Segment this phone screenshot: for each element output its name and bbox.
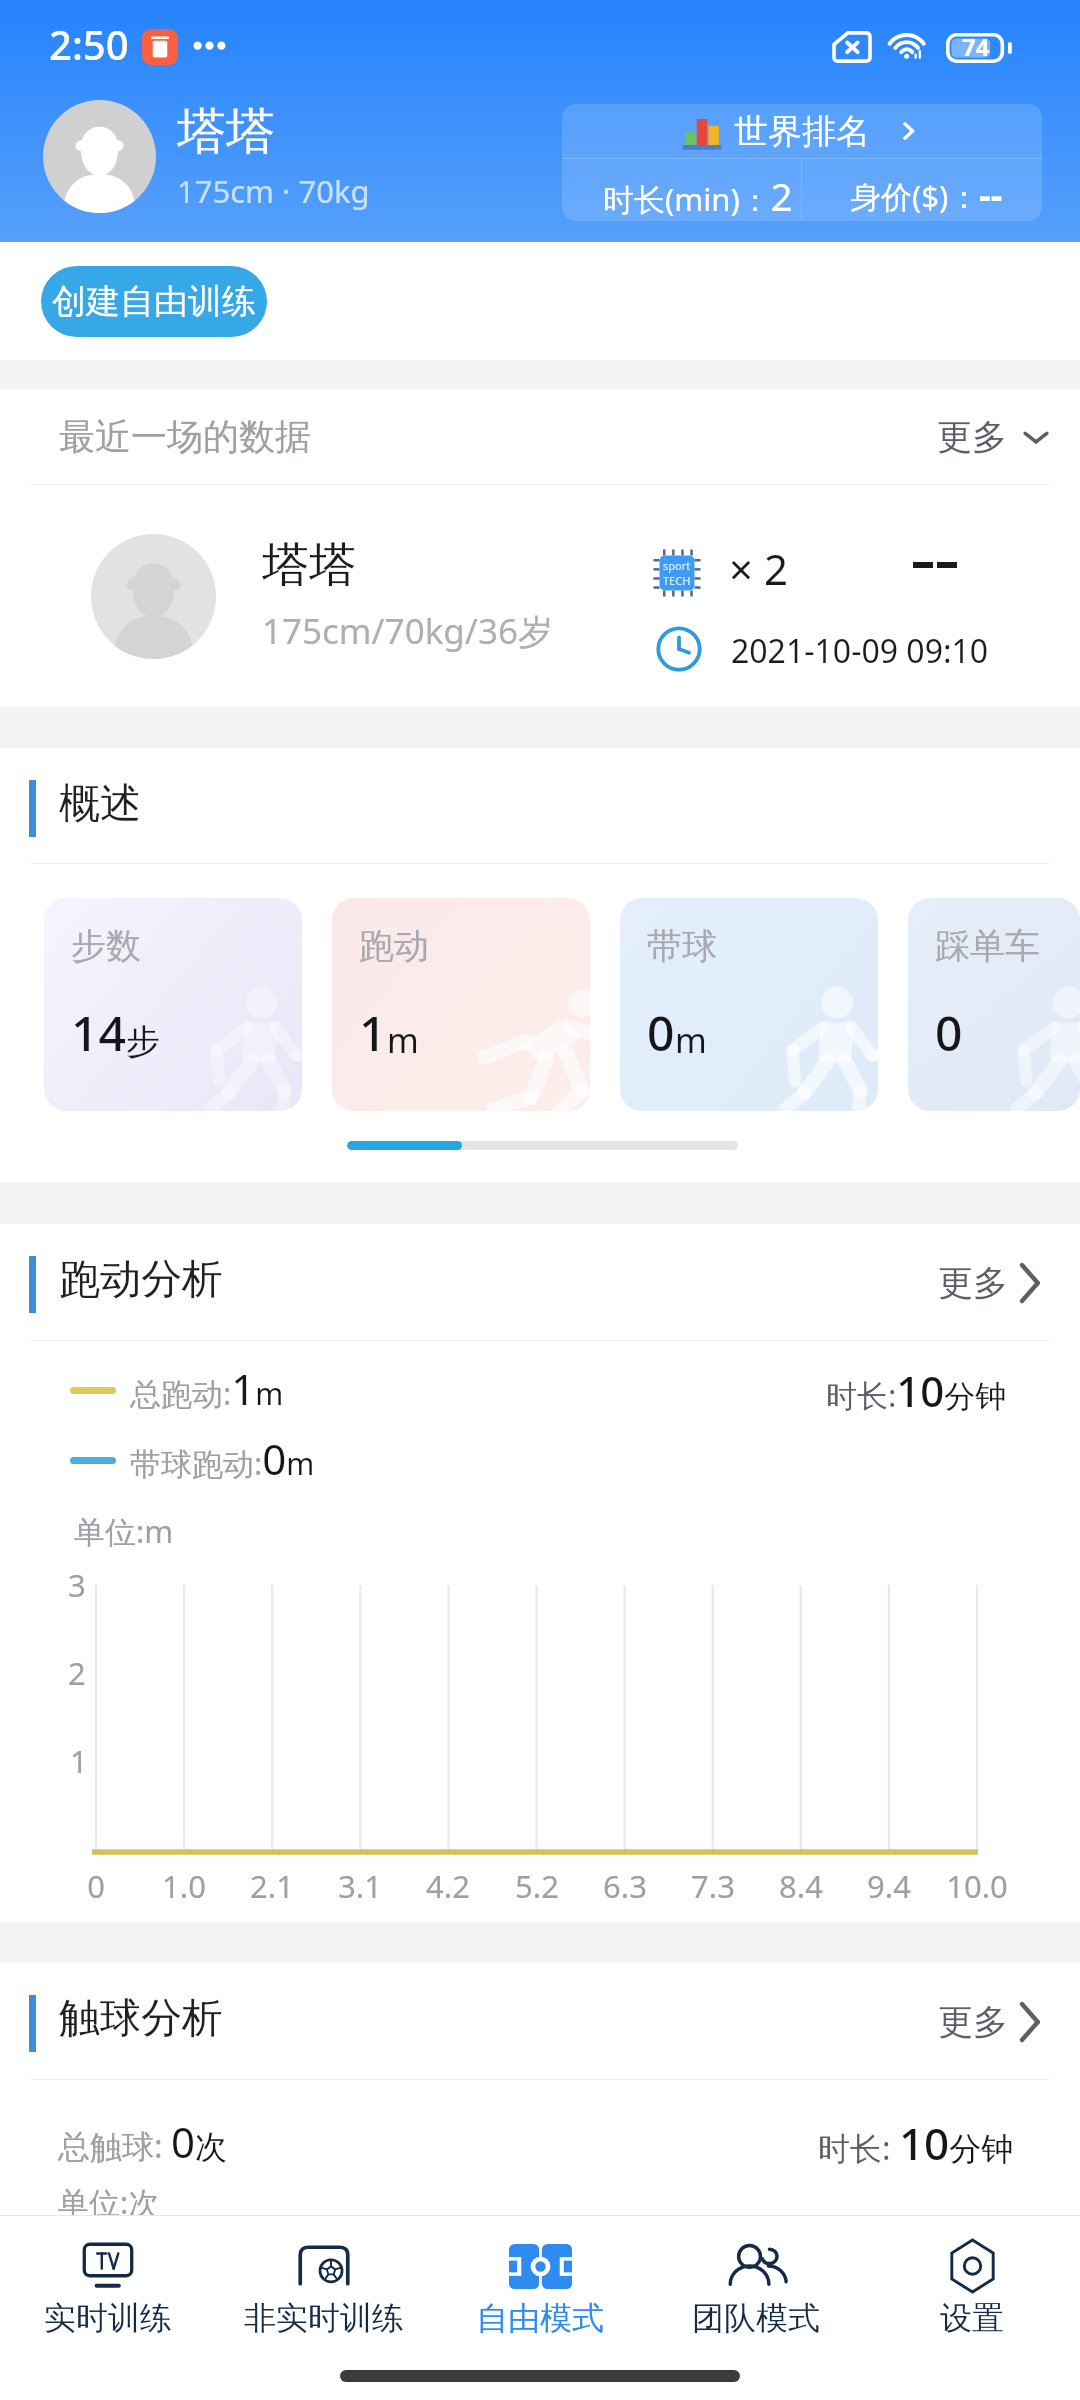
staticText: 塔塔 (177, 101, 275, 163)
staticText: 带球 (647, 924, 717, 968)
button[interactable]: 团队模式 (648, 2216, 864, 2348)
staticText: 4.2 (426, 1865, 470, 1907)
button[interactable]: 非实时训练 (216, 2216, 432, 2348)
staticText: 塔塔 (262, 536, 356, 595)
button[interactable]: 设置 (864, 2216, 1080, 2348)
staticText: 带球跑动:0m (130, 1430, 315, 1487)
staticText: 9.4 (867, 1865, 911, 1907)
staticText: 1.0 (162, 1865, 206, 1907)
staticText: 0 (647, 1000, 675, 1065)
staticText: 175cm/70kg/36岁 (262, 607, 553, 655)
staticText: 单位:次 (58, 2181, 160, 2223)
staticText: 74 (962, 30, 990, 63)
staticText: 3 (68, 1564, 86, 1606)
button[interactable]: 实时训练 (0, 2216, 216, 2348)
button[interactable]: 步数 (44, 898, 302, 1111)
staticText: 步 (126, 1020, 160, 1063)
staticText: 总触球: 0次 (58, 2113, 227, 2170)
staticText: 总跑动:1m (130, 1360, 284, 1417)
staticText: 时长: 10分钟 (818, 2113, 1014, 2173)
staticText: m (675, 1017, 707, 1063)
staticText: 10.0 (946, 1865, 1008, 1907)
button[interactable]: 跑动 (332, 898, 590, 1111)
staticText: 2.1 (250, 1865, 294, 1907)
staticText: 非实时训练 (244, 2298, 404, 2338)
staticText: 自由模式 (476, 2298, 604, 2338)
staticText: 8.4 (779, 1865, 823, 1907)
button[interactable]: 创建自由训练 (41, 266, 267, 337)
staticText: 最近一场的数据 (59, 414, 311, 459)
staticText: 身价($)：-- (850, 170, 1003, 219)
staticText: 175cm · 70kg (177, 170, 370, 212)
staticText: 2 (68, 1652, 86, 1694)
staticText: 0 (87, 1865, 105, 1907)
staticText: 2021-10-09 09:10 (731, 629, 989, 673)
staticText: 1 (70, 1740, 88, 1782)
button[interactable]: 踩单车 (908, 898, 1080, 1111)
staticText: 5.2 (515, 1865, 559, 1907)
staticText: 踩单车 (935, 924, 1040, 968)
staticText: 设置 (940, 2298, 1004, 2338)
staticText: 3.1 (338, 1865, 382, 1907)
button[interactable]: 更多 (938, 1993, 1040, 2051)
staticText: 14 (71, 1000, 126, 1065)
staticText: 更多 (938, 2000, 1008, 2044)
staticText: 触球分析 (59, 1993, 223, 2045)
staticText: 更多 (938, 1261, 1008, 1305)
staticText: TECH (663, 573, 691, 588)
staticText: × 2 (729, 540, 788, 597)
staticText: 概述 (59, 778, 141, 830)
staticText: sport (663, 558, 691, 573)
staticText: 时长(min)：2 (603, 170, 793, 221)
staticText: 步数 (71, 924, 141, 968)
staticText: 6.3 (603, 1865, 647, 1907)
staticText: 1 (359, 1000, 387, 1065)
staticText: m (387, 1017, 419, 1063)
staticText: 跑动 (359, 924, 429, 968)
staticText: 单位:m (74, 1510, 174, 1552)
staticText: 时长:10分钟 (826, 1362, 1007, 1419)
staticText: 跑动分析 (59, 1254, 223, 1306)
button[interactable]: 带球 (620, 898, 878, 1111)
staticText: 更多 (937, 415, 1007, 459)
staticText: 2:50 (49, 17, 129, 71)
staticText: 世界排名 (734, 110, 870, 153)
staticText: 7.3 (691, 1865, 735, 1907)
button[interactable]: 更多 (938, 1254, 1040, 1312)
button[interactable]: 最近一场的数据 (0, 389, 1080, 484)
staticText: 团队模式 (692, 2298, 820, 2338)
staticText: 实时训练 (44, 2298, 172, 2338)
staticText: 0 (935, 1000, 963, 1065)
staticText: 创建自由训练 (52, 280, 256, 323)
button[interactable]: 世界排名 (562, 104, 1042, 221)
button[interactable]: 自由模式 (432, 2216, 648, 2348)
